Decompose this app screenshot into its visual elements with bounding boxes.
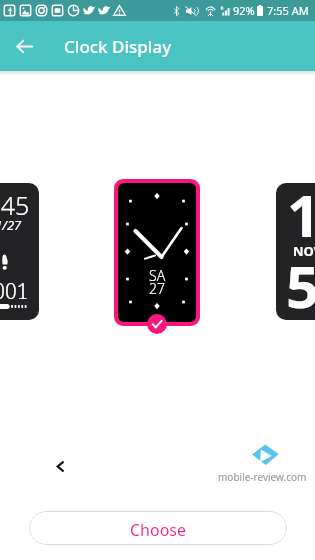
- staticText: mobile-review.com: [218, 470, 307, 484]
- staticText: Choose: [130, 519, 187, 541]
- button[interactable]: Selected: [147, 314, 167, 334]
- staticText: 1 001: [0, 277, 29, 306]
- staticText: 10: [287, 183, 315, 254]
- staticText: Clock Display: [64, 35, 172, 58]
- staticText: 10:45: [0, 188, 30, 222]
- staticText: 7:55 AM: [267, 3, 309, 18]
- button[interactable]: SA: [114, 179, 200, 326]
- button[interactable]: Choose: [29, 511, 287, 545]
- staticText: 27: [149, 279, 165, 298]
- button[interactable]: Next watch face: [276, 183, 315, 320]
- button[interactable]: Previous watch face: [0, 183, 39, 320]
- staticText: 92%: [233, 3, 255, 18]
- button[interactable]: Previous: [47, 453, 73, 479]
- button[interactable]: Back: [10, 32, 38, 60]
- staticText: 55: [286, 246, 315, 320]
- staticText: 11/27: [0, 216, 22, 234]
- staticText: NOV: [293, 242, 315, 260]
- staticText: SA: [149, 266, 166, 285]
